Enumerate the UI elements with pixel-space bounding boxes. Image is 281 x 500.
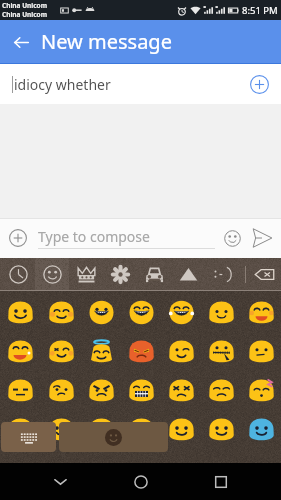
button[interactable]: Emoji 16 xyxy=(81,371,121,410)
button[interactable]: clock xyxy=(1,258,35,290)
button[interactable]: smiley xyxy=(35,258,69,290)
button[interactable]: Emoji 0 xyxy=(0,293,41,332)
button[interactable]: Emoji 19 xyxy=(201,371,241,410)
button[interactable]: Emoji 5 xyxy=(201,293,241,332)
staticText: Type to compose xyxy=(38,227,150,246)
button[interactable]: Emoji 21 xyxy=(0,410,41,449)
button[interactable]: Emoji 20 xyxy=(241,371,281,410)
button[interactable]: Send xyxy=(248,224,276,252)
button[interactable]: Emoji 26 xyxy=(201,410,241,449)
button[interactable]: Emoji 17 xyxy=(121,371,161,410)
staticText: China Unicom xyxy=(2,10,47,19)
button[interactable]: Attach xyxy=(5,225,31,251)
button[interactable]: Emoji 22 xyxy=(41,410,81,449)
button[interactable]: Smileys category xyxy=(59,422,168,452)
button[interactable]: Emoji 11 xyxy=(161,332,201,371)
button[interactable]: text xyxy=(205,258,239,290)
staticText: China Unicom xyxy=(2,1,47,10)
staticText: 8:51 PM xyxy=(242,4,278,17)
button[interactable]: Emoji 24 xyxy=(121,410,161,449)
button[interactable]: Emoji 4 xyxy=(161,293,201,332)
button[interactable]: Emoji xyxy=(219,225,245,251)
button[interactable]: Backspace xyxy=(248,258,281,290)
button[interactable]: Emoji 2 xyxy=(81,293,121,332)
button[interactable]: Keyboard xyxy=(1,422,56,452)
button[interactable]: Emoji 9 xyxy=(81,332,121,371)
button[interactable]: Emoji 18 xyxy=(161,371,201,410)
button[interactable]: Emoji 6 xyxy=(241,293,281,332)
button[interactable]: Emoji 7 xyxy=(0,332,41,371)
staticText: idiocy whether xyxy=(14,75,111,94)
button[interactable]: car xyxy=(137,258,171,290)
button[interactable]: Emoji 12 xyxy=(201,332,241,371)
button[interactable]: Recents xyxy=(201,463,241,500)
button[interactable]: Emoji 27 xyxy=(241,410,281,449)
button[interactable]: Emoji 8 xyxy=(41,332,81,371)
button[interactable]: Hide keyboard xyxy=(40,463,80,500)
button[interactable]: Emoji 10 xyxy=(121,332,161,371)
button[interactable]: Back xyxy=(8,29,34,55)
button[interactable]: Emoji 3 xyxy=(121,293,161,332)
button[interactable]: Emoji 23 xyxy=(81,410,121,449)
button[interactable]: Emoji 13 xyxy=(241,332,281,371)
button[interactable]: flower xyxy=(103,258,137,290)
button[interactable]: Home xyxy=(121,463,161,500)
button[interactable]: Add recipient xyxy=(245,70,273,98)
button[interactable]: Emoji 14 xyxy=(0,371,41,410)
button[interactable]: Emoji 15 xyxy=(41,371,81,410)
button[interactable]: triangle xyxy=(171,258,205,290)
button[interactable]: Emoji 25 xyxy=(161,410,201,449)
staticText: New message xyxy=(41,28,172,55)
button[interactable]: crown xyxy=(69,258,103,290)
button[interactable]: Emoji 1 xyxy=(41,293,81,332)
